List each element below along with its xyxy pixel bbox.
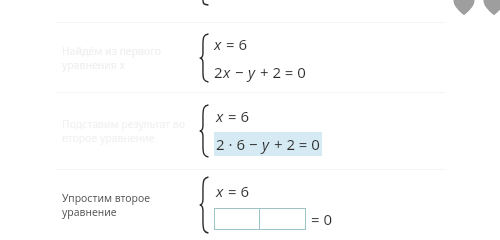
staticText: y xyxy=(248,62,256,82)
button[interactable]: Найдём из первого уравнения x xyxy=(0,23,500,92)
button[interactable]: Жизнь xyxy=(483,0,500,16)
staticText: y xyxy=(262,134,270,154)
staticText: − xyxy=(231,62,248,82)
staticText: = 6 xyxy=(222,34,247,54)
staticText: x xyxy=(223,62,231,82)
button[interactable]: Упростим второе уравнение xyxy=(0,170,500,240)
staticText: 2 xyxy=(214,62,223,82)
staticText: = 6 xyxy=(224,106,249,126)
staticText: Найдём из первого уравнения x xyxy=(62,44,161,72)
staticText: = 6 xyxy=(224,181,249,201)
staticText: + 2 = 0 xyxy=(270,134,320,154)
button[interactable]: Первое поле ввода xyxy=(214,208,259,230)
staticText: x xyxy=(216,106,224,126)
staticText: + 2 = 0 xyxy=(256,62,306,82)
button[interactable]: x xyxy=(0,0,500,22)
staticText: Подставим результат во второе уравнение xyxy=(62,117,185,145)
button[interactable]: Второе поле ввода xyxy=(260,208,306,230)
staticText: 2 · 6 − xyxy=(216,134,262,154)
button[interactable]: Подставим результат во второе уравнение xyxy=(0,93,500,168)
staticText: x xyxy=(216,181,224,201)
staticText: x xyxy=(214,34,222,54)
staticText: = 0 xyxy=(311,209,333,229)
staticText: Упростим второе уравнение xyxy=(62,191,150,219)
button[interactable]: Жизнь xyxy=(453,0,475,16)
